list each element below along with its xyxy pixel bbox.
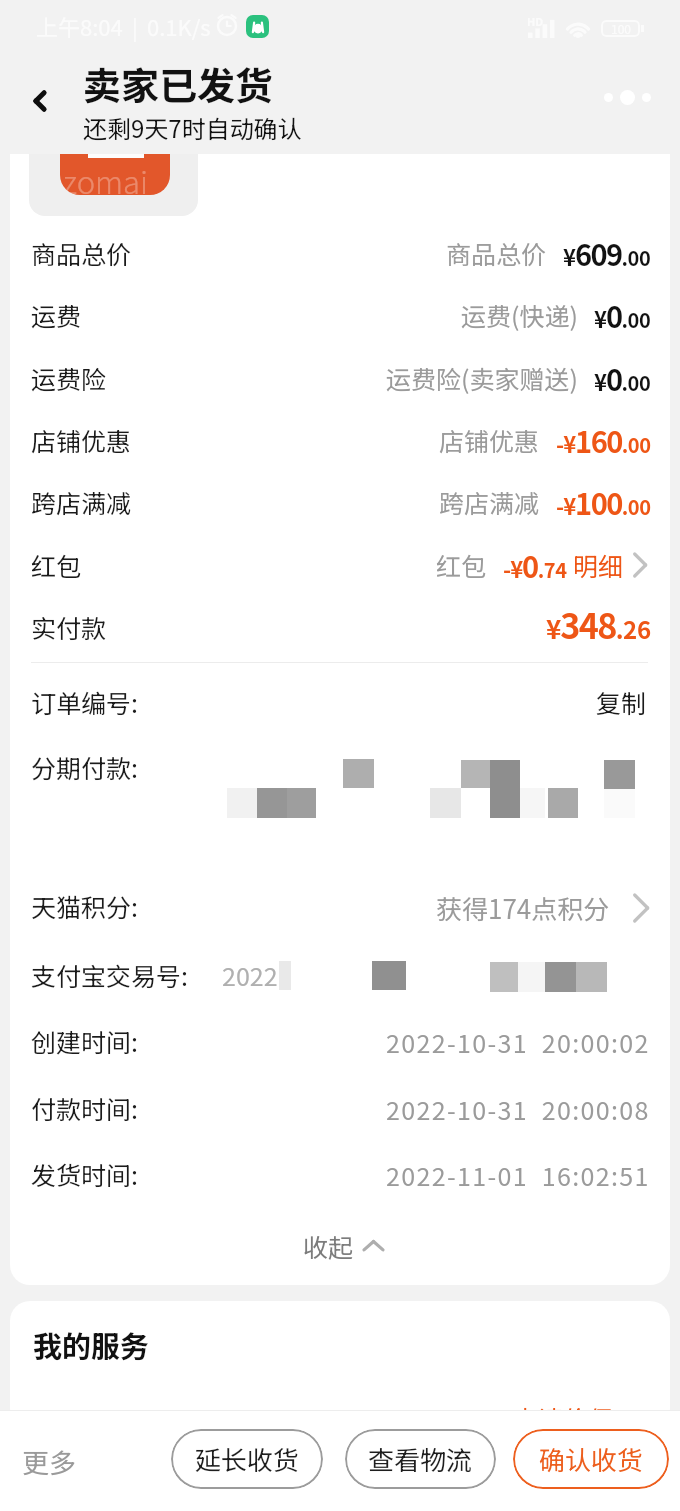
staticText: 2022-10-31 20:00:08 <box>386 1091 650 1127</box>
staticText: 运费险 <box>31 360 107 396</box>
staticText: ¥0.00 <box>594 294 651 336</box>
staticText: 跨店满减 <box>439 484 540 520</box>
button[interactable]: 复制 <box>588 676 655 728</box>
staticText: zomai <box>63 158 149 195</box>
staticText: 运费(快递) <box>461 297 578 333</box>
staticText: 红包 <box>436 547 487 583</box>
staticText: 运费 <box>31 297 82 333</box>
staticText: 申请价保 <box>513 1400 614 1429</box>
staticText: 订单编号: <box>31 684 138 720</box>
staticText: 红包 <box>31 547 82 583</box>
button[interactable]: Back <box>15 77 63 125</box>
staticText: 店铺优惠 <box>31 422 132 458</box>
staticText: 支付宝交易号: <box>31 957 188 993</box>
button[interactable]: 更多 <box>12 1432 86 1491</box>
button[interactable]: More options <box>600 86 655 109</box>
staticText: 我的服务 <box>33 1323 150 1365</box>
staticText: 100 <box>611 20 631 37</box>
staticText: 天猫积分: <box>31 888 138 924</box>
staticText: HD <box>527 13 544 29</box>
staticText: 商品总价 <box>31 235 132 271</box>
staticText: -¥0.74 <box>503 544 567 586</box>
staticText: 卖家已发货 <box>83 56 274 111</box>
staticText: 2022-10-31 20:00:02 <box>386 1024 650 1060</box>
staticText: ¥609.00 <box>563 232 651 274</box>
staticText: 创建时间: <box>31 1023 138 1059</box>
staticText: 商品总价 <box>446 235 547 271</box>
staticText: 更多 <box>22 1442 76 1481</box>
staticText: 获得174点积分 <box>436 889 610 927</box>
staticText: 分期付款: <box>31 749 138 785</box>
button[interactable]: 收起 <box>295 1220 392 1272</box>
button[interactable]: 确认收货 <box>513 1429 669 1489</box>
staticText: 发货时间: <box>31 1156 138 1192</box>
staticText: ¥0.00 <box>594 357 651 399</box>
staticText: 2022 <box>222 957 278 993</box>
staticText: -¥100.00 <box>556 481 651 523</box>
staticText: 确认收货 <box>539 1440 644 1478</box>
staticText: 跨店满减 <box>31 484 132 520</box>
staticText: -¥160.00 <box>556 419 651 461</box>
staticText: 实付款 <box>31 609 107 645</box>
staticText: 查看物流 <box>368 1440 473 1478</box>
staticText: 复制 <box>596 684 647 720</box>
button[interactable]: 延长收货 <box>171 1429 323 1489</box>
staticText: 上午8:04 <box>36 10 123 42</box>
staticText: ¥348.26 <box>546 600 651 649</box>
staticText: 延长收货 <box>195 1440 300 1478</box>
button[interactable]: 明细 <box>573 547 651 583</box>
button[interactable]: 获得174点积分 <box>0 889 651 927</box>
button[interactable]: 查看物流 <box>345 1429 496 1489</box>
staticText: 还剩9天7时自动确认 <box>83 110 302 145</box>
staticText: 2022-11-01 16:02:51 <box>386 1157 650 1193</box>
staticText: 店铺优惠 <box>439 422 540 458</box>
staticText: 付款时间: <box>31 1090 138 1126</box>
staticText: 运费险(卖家赠送) <box>386 360 578 396</box>
staticText: | <box>132 10 138 42</box>
staticText: 明细 <box>573 547 624 583</box>
staticText: 收起 <box>303 1228 354 1264</box>
